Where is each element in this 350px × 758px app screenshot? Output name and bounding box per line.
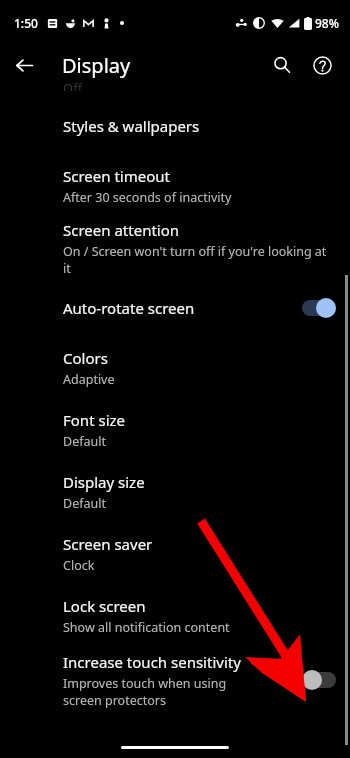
staticText: Display (62, 52, 131, 79)
staticText: Auto-rotate screen (63, 298, 195, 318)
button[interactable]: Font size (0, 399, 350, 461)
staticText: Show all notification content (63, 619, 230, 636)
staticText: Default (63, 495, 106, 512)
button[interactable]: Back (4, 45, 44, 85)
button[interactable]: Lock screen (0, 585, 350, 647)
staticText: 98% (315, 15, 339, 31)
button[interactable]: Increase touch sensitivity (0, 647, 350, 713)
button[interactable]: Search (262, 45, 302, 85)
staticText: Screen attention (63, 220, 180, 240)
staticText: Styles & wallpapers (63, 116, 200, 136)
button[interactable]: Toggle off (302, 670, 336, 690)
staticText: On / Screen won't turn off if you're loo… (63, 243, 336, 277)
staticText: Display size (63, 472, 145, 492)
button[interactable]: Help (302, 45, 342, 85)
staticText: Default (63, 433, 106, 450)
staticText: 1:50 (14, 15, 38, 31)
button[interactable]: Display size (0, 461, 350, 523)
button[interactable]: Auto-rotate screen (0, 279, 350, 337)
staticText: Screen saver (63, 534, 153, 554)
staticText: Colors (63, 348, 108, 368)
button[interactable]: Styles & wallpapers (0, 97, 350, 155)
staticText: Increase touch sensitivity (63, 652, 241, 672)
button[interactable]: Screen timeout (0, 155, 350, 217)
staticText: Lock screen (63, 596, 146, 616)
staticText: Screen timeout (63, 166, 170, 186)
button[interactable]: Screen saver (0, 523, 350, 585)
staticText: Clock (63, 557, 95, 574)
staticText: Off (63, 79, 83, 91)
button[interactable]: Colors (0, 337, 350, 399)
button[interactable]: Toggle on (302, 298, 336, 318)
button[interactable]: Screen attention (0, 217, 350, 279)
staticText: Improves touch when using screen protect… (63, 675, 263, 709)
staticText: Font size (63, 410, 126, 430)
staticText: After 30 seconds of inactivity (63, 189, 232, 206)
staticText: Adaptive (63, 371, 115, 388)
